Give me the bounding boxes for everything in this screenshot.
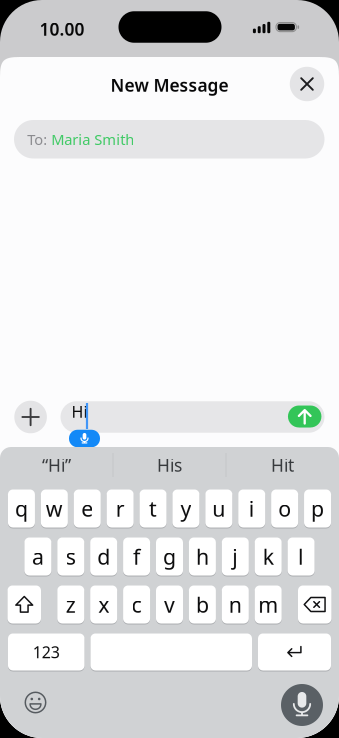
button[interactable]: y bbox=[172, 489, 199, 528]
button[interactable]: a bbox=[24, 537, 51, 576]
staticText: z bbox=[66, 590, 76, 619]
button[interactable]: Emoji bbox=[22, 689, 48, 715]
staticText: s bbox=[66, 542, 76, 571]
staticText: k bbox=[263, 542, 274, 571]
button[interactable]: l bbox=[288, 537, 315, 576]
button[interactable]: Return bbox=[258, 633, 331, 671]
staticText: Maria Smith bbox=[51, 129, 134, 149]
button[interactable]: u bbox=[205, 489, 232, 528]
staticText: “Hi” bbox=[42, 453, 71, 476]
button[interactable]: Dictation bbox=[69, 430, 100, 447]
button[interactable]: h bbox=[189, 537, 216, 576]
button[interactable]: Hit bbox=[226, 450, 339, 480]
button[interactable]: w bbox=[41, 489, 68, 528]
button[interactable]: r bbox=[107, 489, 134, 528]
button[interactable]: x bbox=[90, 585, 117, 624]
staticText: f bbox=[133, 542, 140, 571]
button[interactable]: k bbox=[255, 537, 282, 576]
button[interactable]: d bbox=[90, 537, 117, 576]
staticText: i bbox=[249, 494, 255, 523]
button[interactable]: 123 bbox=[8, 633, 84, 671]
button[interactable]: b bbox=[189, 585, 216, 624]
button[interactable]: “Hi” bbox=[0, 450, 113, 480]
staticText: d bbox=[97, 542, 110, 571]
button[interactable]: t bbox=[139, 489, 166, 528]
staticText: 10.00 bbox=[39, 17, 84, 40]
staticText: n bbox=[229, 590, 242, 619]
button[interactable]: To: bbox=[14, 120, 324, 158]
button[interactable]: Add bbox=[14, 401, 47, 433]
staticText: u bbox=[212, 494, 225, 523]
button[interactable]: m bbox=[255, 585, 282, 624]
staticText: h bbox=[196, 542, 209, 571]
button[interactable]: g bbox=[156, 537, 183, 576]
button[interactable]: Space bbox=[90, 633, 252, 671]
staticText: His bbox=[157, 453, 182, 476]
staticText: o bbox=[278, 494, 291, 523]
staticText: v bbox=[164, 590, 175, 619]
staticText: Hi bbox=[71, 401, 87, 422]
button[interactable]: Dictate bbox=[281, 684, 323, 726]
staticText: x bbox=[98, 590, 109, 619]
button[interactable]: Close bbox=[290, 67, 324, 101]
button[interactable]: Delete bbox=[298, 585, 331, 624]
button[interactable]: s bbox=[57, 537, 84, 576]
staticText: g bbox=[163, 542, 176, 571]
button[interactable]: Shift bbox=[7, 585, 41, 624]
button[interactable]: Send bbox=[288, 405, 321, 427]
button[interactable]: n bbox=[222, 585, 249, 624]
button[interactable]: Message field bbox=[60, 401, 324, 433]
staticText: a bbox=[32, 542, 44, 571]
staticText: 123 bbox=[33, 641, 60, 663]
button[interactable]: c bbox=[123, 585, 150, 624]
button[interactable]: p bbox=[304, 489, 331, 528]
staticText: c bbox=[132, 590, 142, 619]
staticText: t bbox=[149, 494, 157, 523]
button[interactable]: e bbox=[74, 489, 101, 528]
button[interactable]: f bbox=[123, 537, 150, 576]
button[interactable]: j bbox=[222, 537, 249, 576]
button[interactable]: v bbox=[156, 585, 183, 624]
staticText: e bbox=[81, 494, 93, 523]
staticText: y bbox=[180, 494, 191, 523]
staticText: p bbox=[311, 494, 324, 523]
staticText: l bbox=[298, 542, 304, 571]
staticText: j bbox=[232, 542, 238, 571]
staticText: m bbox=[258, 590, 278, 619]
staticText: w bbox=[46, 494, 63, 523]
staticText: q bbox=[15, 494, 28, 523]
button[interactable]: z bbox=[57, 585, 84, 624]
staticText: Hit bbox=[271, 453, 294, 476]
button[interactable]: o bbox=[271, 489, 298, 528]
button[interactable]: i bbox=[238, 489, 265, 528]
staticText: To: bbox=[27, 129, 47, 149]
button[interactable]: q bbox=[8, 489, 35, 528]
button[interactable]: His bbox=[113, 450, 226, 480]
staticText: New Message bbox=[110, 73, 228, 96]
staticText: r bbox=[116, 494, 125, 523]
staticText: b bbox=[196, 590, 209, 619]
